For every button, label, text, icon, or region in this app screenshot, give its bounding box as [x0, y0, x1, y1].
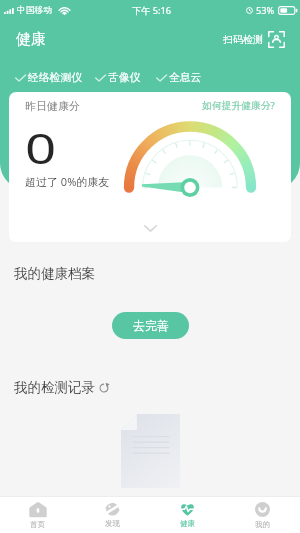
button[interactable]: 我的 — [225, 497, 300, 533]
staticText: 昨日健康分 — [25, 99, 80, 113]
staticText: 我的检测记录 — [14, 379, 95, 396]
staticText: 健康 — [180, 519, 195, 528]
staticText: 我的健康档案 — [14, 265, 95, 282]
staticText: 首页 — [30, 520, 45, 529]
staticText: 全息云 — [169, 71, 202, 85]
staticText: 下午 5:16 — [132, 4, 171, 17]
staticText: 扫码检测 — [223, 33, 263, 46]
staticText: 健康 — [16, 30, 46, 49]
staticText: 中国移动 — [17, 5, 53, 16]
button[interactable]: 经络检测仪 — [15, 71, 82, 85]
button[interactable]: 如何提升健康分? — [202, 99, 275, 112]
staticText: 发现 — [105, 519, 120, 528]
button[interactable]: Expand — [139, 221, 161, 235]
staticText: 去完善 — [133, 318, 169, 333]
staticText: 0 — [25, 118, 57, 176]
staticText: 经络检测仪 — [28, 71, 82, 85]
button[interactable]: 发现 — [75, 497, 150, 533]
button[interactable]: 全息云 — [156, 71, 202, 85]
staticText: 超过了 0%的康友 — [25, 174, 110, 189]
button[interactable]: 去完善 — [112, 312, 189, 339]
button[interactable]: 扫码检测 — [223, 31, 285, 48]
staticText: 如何提升健康分? — [202, 99, 275, 112]
button[interactable]: 舌像仪 — [95, 71, 141, 85]
staticText: 53% — [256, 4, 275, 17]
button[interactable]: 首页 — [0, 497, 75, 533]
staticText: 舌像仪 — [108, 71, 141, 85]
button[interactable]: 健康 — [150, 497, 225, 533]
staticText: 我的 — [255, 520, 270, 529]
